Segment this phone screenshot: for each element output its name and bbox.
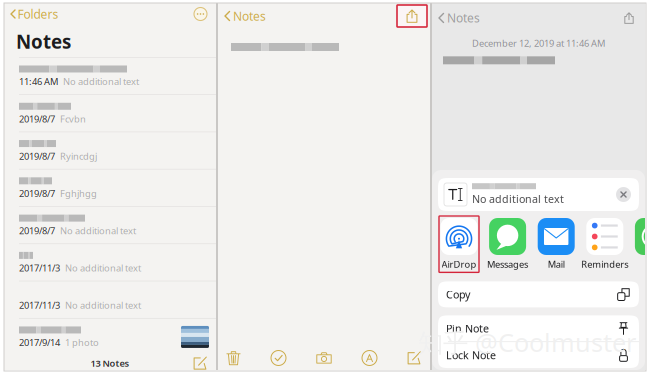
staticText: Reminders — [581, 258, 628, 270]
staticText: Lock Note — [446, 348, 496, 362]
staticText: Notes — [16, 29, 71, 54]
staticText: Wh — [646, 258, 650, 270]
button[interactable]: Notes — [224, 6, 266, 26]
button[interactable]: 2017/9/14 — [4, 319, 216, 355]
button[interactable]: Share — [397, 5, 427, 27]
button[interactable]: Wh — [633, 216, 650, 272]
button[interactable]: Folders — [10, 4, 58, 24]
staticText: No additional text — [65, 299, 141, 311]
button[interactable]: Notes — [438, 8, 480, 28]
button[interactable]: Copy — [438, 281, 639, 307]
staticText: 2019/8/7 — [19, 113, 55, 125]
staticText: 2019/8/7 — [19, 224, 55, 237]
staticText: Pin Note — [446, 321, 489, 335]
button[interactable]: Reminders — [585, 216, 625, 272]
button[interactable]: Pin Note — [438, 315, 639, 341]
staticText: 2019/8/7 — [19, 150, 55, 162]
button[interactable]: Share — [623, 12, 635, 24]
button[interactable]: 2019/8/7 — [4, 132, 216, 169]
button[interactable]: Close — [616, 187, 631, 202]
staticText: 2017/9/14 — [19, 336, 60, 349]
button[interactable]: 2017/11/3 — [4, 244, 216, 281]
staticText: 11:46 AM — [19, 75, 58, 88]
staticText: 1 photo — [65, 336, 99, 349]
staticText: 13 Notes — [90, 357, 129, 369]
staticText: 2019/8/7 — [19, 187, 55, 199]
staticText: Fcvbn — [60, 113, 86, 125]
staticText: No additional text — [472, 192, 564, 206]
button[interactable]: More — [194, 7, 207, 20]
staticText: No additional text — [60, 224, 136, 237]
staticText: AirDrop — [441, 258, 476, 270]
staticText: Ryincdgj — [60, 150, 97, 162]
staticText: December 12, 2019 at 11:46 AM — [472, 37, 605, 49]
button[interactable]: Mail — [536, 216, 576, 272]
button[interactable]: 2017/11/3 — [4, 281, 216, 318]
button[interactable]: Messages — [488, 216, 528, 272]
button[interactable]: 2019/8/7 — [4, 207, 216, 243]
staticText: No additional text — [65, 262, 141, 274]
button[interactable]: New note — [193, 356, 207, 370]
button[interactable]: 11:46 AM — [4, 58, 216, 94]
button[interactable]: Delete — [226, 350, 241, 365]
button[interactable]: 2019/8/7 — [4, 95, 216, 132]
staticText: Mail — [548, 258, 565, 270]
button[interactable]: New note — [407, 351, 421, 365]
staticText: 知乎 @Coolmuster — [418, 325, 636, 359]
button[interactable]: Lock Note — [438, 342, 639, 368]
staticText: 2017/11/3 — [19, 262, 60, 274]
button[interactable]: Camera — [316, 350, 332, 366]
staticText: Fghjhgg — [60, 187, 97, 199]
staticText: 2017/11/3 — [19, 299, 60, 311]
staticText: No additional text — [63, 75, 139, 88]
staticText: Messages — [487, 258, 528, 270]
button[interactable]: 2019/8/7 — [4, 169, 216, 206]
staticText: Notes — [233, 8, 266, 24]
staticText: Notes — [447, 10, 480, 26]
staticText: Folders — [17, 6, 58, 22]
staticText: Copy — [446, 287, 470, 301]
button[interactable]: AirDrop — [439, 216, 479, 272]
button[interactable]: Checklist — [271, 350, 286, 365]
button[interactable]: Markup — [362, 350, 377, 365]
